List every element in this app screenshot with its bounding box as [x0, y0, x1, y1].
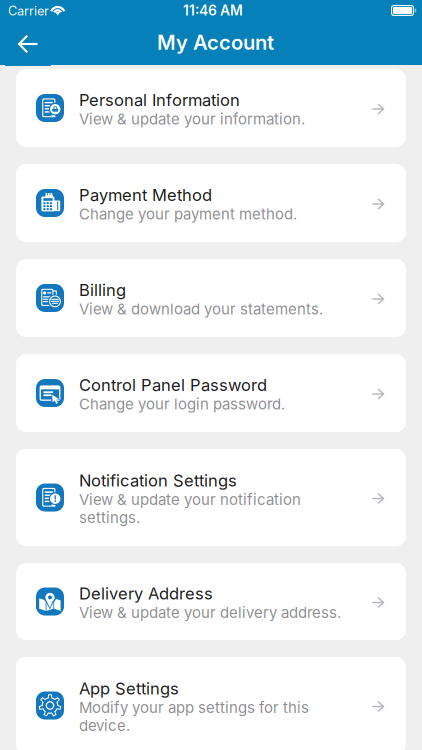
button[interactable]: Billing [16, 259, 406, 337]
button[interactable]: Delivery Address [16, 563, 406, 640]
staticText: Control Panel Password [79, 375, 267, 395]
staticText: Billing [79, 280, 126, 300]
staticText: Personal Information [79, 90, 240, 110]
staticText: App Settings [79, 678, 179, 698]
staticText: Change your payment method. [79, 205, 297, 223]
staticText: View & update your notification settings… [79, 490, 301, 526]
staticText: Change your login password. [79, 395, 285, 413]
staticText: Notification Settings [79, 470, 237, 490]
button[interactable]: Control Panel Password [16, 354, 406, 432]
staticText: 11:46 AM [183, 2, 243, 19]
button[interactable]: Back [5, 22, 51, 66]
staticText: Modify your app settings for this device… [79, 698, 309, 734]
button[interactable]: Notification Settings [16, 449, 406, 546]
button[interactable]: Payment Method [16, 164, 406, 242]
staticText: Payment Method [79, 185, 212, 205]
staticText: Carrier [8, 3, 49, 18]
button[interactable]: Personal Information [16, 69, 406, 147]
button[interactable]: App Settings [16, 657, 406, 750]
staticText: View & update your information. [79, 110, 305, 128]
staticText: View & update your delivery address. [79, 603, 341, 622]
staticText: View & download your statements. [79, 300, 323, 318]
staticText: Delivery Address [79, 583, 213, 603]
staticText: My Account [157, 30, 274, 54]
